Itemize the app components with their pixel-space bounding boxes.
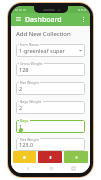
button[interactable]: Home: [46, 163, 56, 173]
button[interactable]: 123.0: [16, 137, 85, 151]
button[interactable]: More options: [79, 15, 88, 24]
staticText: 1-greenleaf super: [19, 47, 65, 54]
staticText: Gross Weight: [20, 61, 43, 66]
button[interactable]: Save draft: [13, 151, 36, 163]
button[interactable]: 1: [16, 118, 85, 133]
button[interactable]: Open navigation menu: [14, 15, 23, 24]
staticText: Bags: [20, 118, 29, 123]
button[interactable]: 2: [16, 99, 85, 114]
staticText: 1: [19, 123, 23, 130]
button[interactable]: Recent apps: [68, 163, 78, 173]
button[interactable]: 1-greenleaf super: [16, 42, 85, 57]
staticText: 2: [19, 104, 23, 111]
staticText: 128: [19, 66, 29, 73]
staticText: Item Name: [20, 42, 39, 47]
staticText: Net Weight: [20, 137, 39, 142]
button[interactable]: Confirm: [64, 151, 88, 163]
button[interactable]: Back: [23, 163, 33, 173]
staticText: Add New Collection: [16, 30, 71, 38]
staticText: Dashboard: [25, 15, 62, 25]
staticText: 2: [19, 85, 23, 92]
staticText: Net Weight: [20, 80, 39, 85]
button[interactable]: 128: [16, 61, 85, 76]
button[interactable]: Delete: [38, 151, 62, 163]
staticText: Bags Weight: [20, 99, 42, 104]
staticText: 123.0: [19, 141, 34, 148]
button[interactable]: 2: [16, 80, 85, 95]
